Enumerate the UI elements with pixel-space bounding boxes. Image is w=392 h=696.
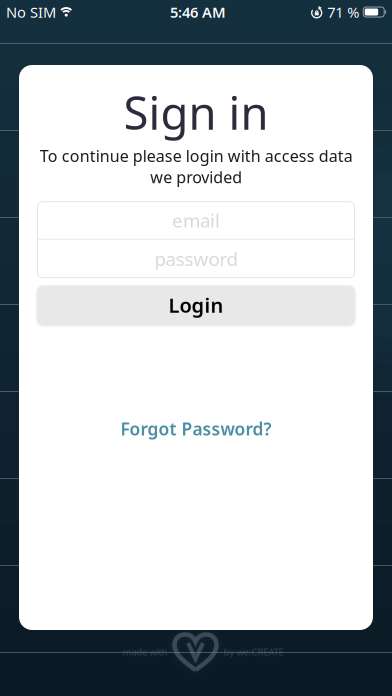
staticText: Forgot Password?	[120, 417, 271, 440]
staticText: email	[172, 208, 220, 233]
button[interactable]: password	[37, 240, 354, 278]
staticText: Sign in	[123, 82, 268, 142]
staticText: by we:CREATE	[223, 646, 283, 658]
staticText: Login	[168, 292, 223, 318]
staticText: 5:46 AM	[170, 2, 226, 22]
staticText: made with	[122, 646, 167, 658]
button[interactable]: email	[37, 202, 354, 239]
staticText: To continue please login with access dat…	[39, 145, 352, 188]
button[interactable]: Forgot Password?	[120, 417, 271, 440]
staticText: password	[154, 246, 237, 271]
button[interactable]: Login	[37, 286, 354, 324]
staticText: 71 %	[327, 2, 359, 22]
staticText: No SIM	[6, 2, 56, 22]
